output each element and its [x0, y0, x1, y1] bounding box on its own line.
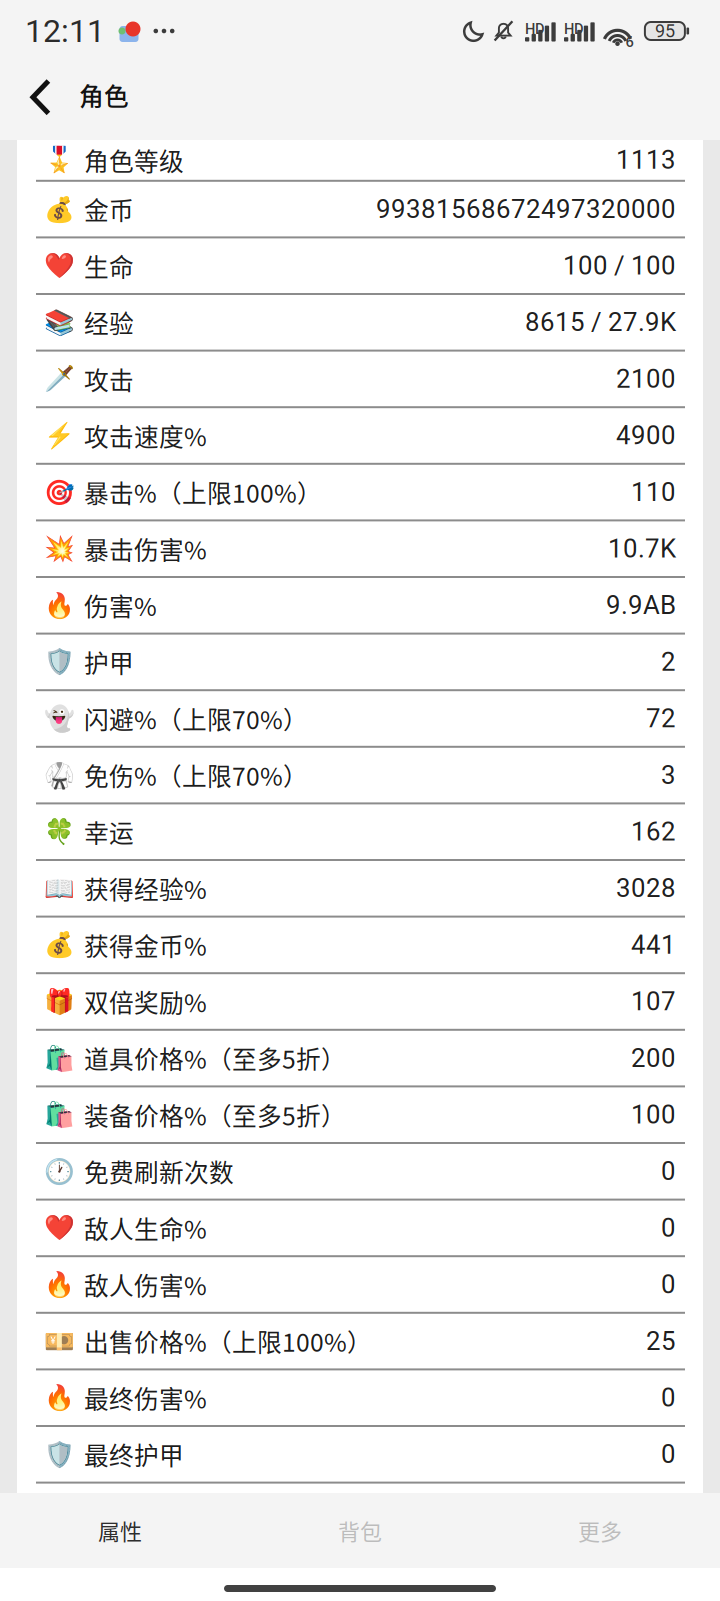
button[interactable]: 🍀 — [17, 804, 703, 861]
staticText: 金币 — [84, 191, 134, 227]
button[interactable]: ❤️ — [17, 238, 703, 295]
staticText: 2 — [661, 647, 676, 677]
staticText: 经验 — [84, 304, 134, 340]
button[interactable]: ❤️ — [17, 1201, 703, 1257]
staticText: 最终护甲 — [84, 1436, 184, 1472]
staticText: 💰 — [44, 930, 75, 959]
staticText: 出售价格%（上限100%） — [84, 1323, 372, 1359]
staticText: 🔥 — [44, 1270, 75, 1299]
staticText: 双倍奖励% — [84, 984, 207, 1019]
staticText: 441 — [631, 930, 676, 960]
staticText: 👻 — [44, 704, 75, 733]
staticText: 幸运 — [84, 814, 134, 849]
staticText: 暴击%（上限100%） — [84, 474, 322, 510]
button[interactable]: 🔥 — [17, 1370, 703, 1427]
staticText: 道具价格%（至多5折） — [84, 1040, 346, 1076]
staticText: 6 — [625, 33, 633, 51]
button[interactable]: 🥋 — [17, 748, 703, 804]
staticText: 🎖️ — [44, 145, 75, 174]
staticText: 8615 / 27.9K — [525, 307, 676, 337]
staticText: 4900 — [616, 420, 676, 451]
staticText: 免伤%（上限70%） — [84, 757, 308, 793]
button[interactable]: 📚 — [17, 295, 703, 352]
staticText: 🥋 — [44, 761, 75, 789]
staticText: 100 — [631, 1100, 676, 1130]
staticText: ❤️ — [44, 251, 75, 280]
staticText: 🛡️ — [44, 1440, 75, 1469]
staticText: 🗡️ — [44, 364, 75, 393]
staticText: 1113 — [616, 145, 676, 175]
button[interactable]: 💰 — [17, 918, 703, 974]
button[interactable]: 🎯 — [17, 465, 703, 521]
button[interactable]: 💴 — [17, 1314, 703, 1370]
staticText: 💰 — [44, 195, 75, 223]
staticText: 获得经验% — [84, 870, 207, 906]
button[interactable]: 属性 — [0, 1493, 240, 1568]
button[interactable]: 🎁 — [17, 974, 703, 1031]
staticText: 闪避%（上限70%） — [84, 701, 308, 736]
button[interactable]: 🛡️ — [17, 1427, 703, 1484]
staticText: 107 — [631, 986, 676, 1017]
staticText: 角色 — [79, 77, 129, 113]
staticText: 🛡️ — [44, 647, 75, 676]
staticText: 25 — [646, 1326, 676, 1356]
staticText: 0 — [661, 1269, 676, 1300]
button[interactable]: 🛍️ — [17, 1031, 703, 1087]
staticText: 0 — [661, 1213, 676, 1243]
staticText: 敌人伤害% — [84, 1267, 207, 1302]
staticText: 99381568672497320000 — [376, 194, 676, 224]
staticText: 背包 — [338, 1515, 382, 1546]
staticText: 敌人生命% — [84, 1210, 207, 1246]
staticText: 装备价格%（至多5折） — [84, 1097, 346, 1132]
staticText: 9.9AB — [606, 590, 676, 620]
staticText: 📖 — [44, 874, 75, 903]
staticText: ❤️ — [44, 1213, 75, 1242]
staticText: 💴 — [44, 1327, 75, 1355]
button[interactable]: 💥 — [17, 521, 703, 578]
staticText: 0 — [661, 1439, 676, 1469]
button[interactable]: 🛡️ — [17, 635, 703, 691]
staticText: 攻击速度% — [84, 418, 207, 453]
button[interactable]: 📖 — [17, 861, 703, 918]
button[interactable]: 🎖️ — [17, 140, 703, 182]
staticText: 🎯 — [44, 478, 75, 506]
staticText: 12:11 — [25, 12, 105, 50]
staticText: 💥 — [44, 534, 75, 563]
staticText: 伤害% — [84, 587, 157, 623]
staticText: 0 — [661, 1156, 676, 1186]
staticText: 角色等级 — [84, 142, 184, 178]
button[interactable]: ⚡ — [17, 408, 703, 465]
button[interactable]: Back — [30, 77, 64, 125]
staticText: 72 — [646, 703, 676, 734]
button[interactable]: 🗡️ — [17, 352, 703, 408]
staticText: 生命 — [84, 248, 134, 283]
button[interactable]: 💰 — [17, 182, 703, 238]
staticText: 0 — [661, 1383, 676, 1413]
staticText: 162 — [631, 817, 676, 847]
staticText: 🎁 — [44, 987, 75, 1016]
staticText: 10.7K — [608, 534, 676, 564]
staticText: 🔥 — [44, 1383, 75, 1412]
staticText: 🍀 — [44, 817, 75, 846]
staticText: 护甲 — [84, 644, 134, 680]
button[interactable]: 背包 — [240, 1493, 480, 1568]
staticText: 更多 — [578, 1515, 622, 1546]
button[interactable]: 更多 — [480, 1493, 720, 1568]
staticText: 200 — [631, 1043, 676, 1073]
staticText: 110 — [631, 477, 676, 507]
button[interactable]: 🛍️ — [17, 1087, 703, 1144]
button[interactable]: 🕐 — [17, 1144, 703, 1201]
staticText: 🛍️ — [44, 1100, 75, 1129]
staticText: 最终伤害% — [84, 1380, 207, 1415]
staticText: HD — [564, 20, 584, 38]
button[interactable]: 🔥 — [17, 1257, 703, 1314]
staticText: ⚡ — [44, 421, 75, 450]
staticText: 3 — [661, 760, 676, 790]
staticText: 属性 — [98, 1515, 142, 1546]
staticText: 🔥 — [44, 591, 75, 620]
button[interactable]: 👻 — [17, 691, 703, 748]
button[interactable]: 🔥 — [17, 578, 703, 635]
staticText: 🛍️ — [44, 1044, 75, 1072]
staticText: 📚 — [44, 308, 75, 337]
staticText: 2100 — [616, 364, 676, 394]
